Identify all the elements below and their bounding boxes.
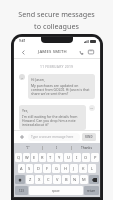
- staticText: return: [87, 189, 96, 193]
- button[interactable]: T: [47, 153, 54, 162]
- button[interactable]: M: [80, 175, 88, 184]
- staticText: K: [82, 166, 85, 171]
- button[interactable]: Call: [76, 47, 86, 57]
- staticText: M: [82, 177, 86, 182]
- button[interactable]: Y: [55, 153, 63, 162]
- staticText: 9:41: [19, 39, 26, 43]
- staticText: Yes,: [22, 108, 29, 113]
- button[interactable]: X: [35, 175, 43, 184]
- button[interactable]: K: [79, 164, 87, 173]
- staticText: Send secure messages: [18, 9, 95, 19]
- staticText: F: [46, 166, 49, 171]
- button[interactable]: I: [43, 143, 71, 152]
- button[interactable]: I: [73, 153, 81, 162]
- button[interactable]: R: [39, 153, 46, 162]
- staticText: JAMES SMITH: [38, 49, 67, 55]
- button[interactable]: S: [26, 164, 33, 173]
- button[interactable]: New message: [86, 47, 96, 57]
- staticText: A: [20, 166, 23, 171]
- staticText: O: [84, 155, 88, 160]
- button[interactable]: J: [70, 164, 78, 173]
- button[interactable]: O: [82, 153, 90, 162]
- staticText: T: [49, 155, 52, 160]
- staticText: 11 FEBRUARY 2019: [40, 64, 74, 69]
- button[interactable]: L: [88, 164, 96, 173]
- staticText: Hi Jason,: [31, 77, 45, 82]
- button[interactable]: "I": [14, 143, 42, 152]
- staticText: U: [67, 155, 70, 160]
- button[interactable]: return: [84, 186, 99, 195]
- staticText: X: [38, 177, 41, 182]
- staticText: Y: [58, 155, 61, 160]
- button[interactable]: 123: [15, 186, 28, 195]
- staticText: space: [52, 189, 60, 193]
- button[interactable]: E: [31, 153, 38, 162]
- button[interactable]: U: [64, 153, 72, 162]
- button[interactable]: D: [34, 164, 42, 173]
- button[interactable]: Thanks: [72, 143, 100, 152]
- staticText: N: [73, 177, 77, 182]
- staticText: R: [41, 155, 44, 160]
- button[interactable]: N: [71, 175, 79, 184]
- staticText: L: [91, 166, 94, 171]
- staticText: SEND: [85, 135, 93, 139]
- staticText: Z: [29, 177, 32, 182]
- button[interactable]: space: [29, 186, 83, 195]
- button[interactable]: Delete: [89, 175, 99, 184]
- staticText: G: [55, 166, 58, 171]
- staticText: JS: [21, 76, 23, 79]
- staticText: E: [33, 155, 36, 160]
- staticText: Type a secure message here: [31, 135, 74, 139]
- button[interactable]: Back: [18, 47, 28, 57]
- button[interactable]: G: [52, 164, 60, 173]
- staticText: D: [37, 166, 40, 171]
- button[interactable]: Yes,: [19, 105, 86, 130]
- staticText: C: [47, 177, 50, 182]
- button[interactable]: H: [61, 164, 69, 173]
- staticText: Thanks: [81, 146, 92, 150]
- staticText: P: [94, 155, 97, 160]
- staticText: Q: [17, 155, 21, 160]
- staticText: ME: [90, 107, 94, 110]
- button[interactable]: V: [53, 175, 61, 184]
- button[interactable]: F: [43, 164, 51, 173]
- button[interactable]: Type a secure message here: [28, 133, 80, 141]
- staticText: W: [25, 155, 29, 160]
- staticText: B: [65, 177, 68, 182]
- staticText: 123: [19, 189, 24, 193]
- button[interactable]: A: [18, 164, 25, 173]
- button[interactable]: SEND: [82, 133, 96, 141]
- staticText: S: [28, 166, 31, 171]
- staticText: I: [76, 155, 78, 160]
- staticText: I: [56, 146, 58, 150]
- staticText: J: [73, 166, 75, 171]
- staticText: I'm still waiting for the details from H…: [22, 114, 83, 127]
- staticText: V: [56, 177, 59, 182]
- staticText: "I": [26, 146, 30, 150]
- button[interactable]: Add attachment: [18, 133, 26, 141]
- button[interactable]: Q: [15, 153, 22, 162]
- button[interactable]: C: [44, 175, 52, 184]
- staticText: H: [64, 166, 67, 171]
- button[interactable]: P: [91, 153, 99, 162]
- button[interactable]: W: [23, 153, 30, 162]
- button[interactable]: Hi Jason,: [28, 74, 95, 99]
- staticText: My purchases are updated on contract fro…: [31, 83, 92, 96]
- button[interactable]: B: [62, 175, 70, 184]
- button[interactable]: Z: [26, 175, 34, 184]
- staticText: to colleagues: [34, 21, 79, 31]
- button[interactable]: Shift: [15, 175, 25, 184]
